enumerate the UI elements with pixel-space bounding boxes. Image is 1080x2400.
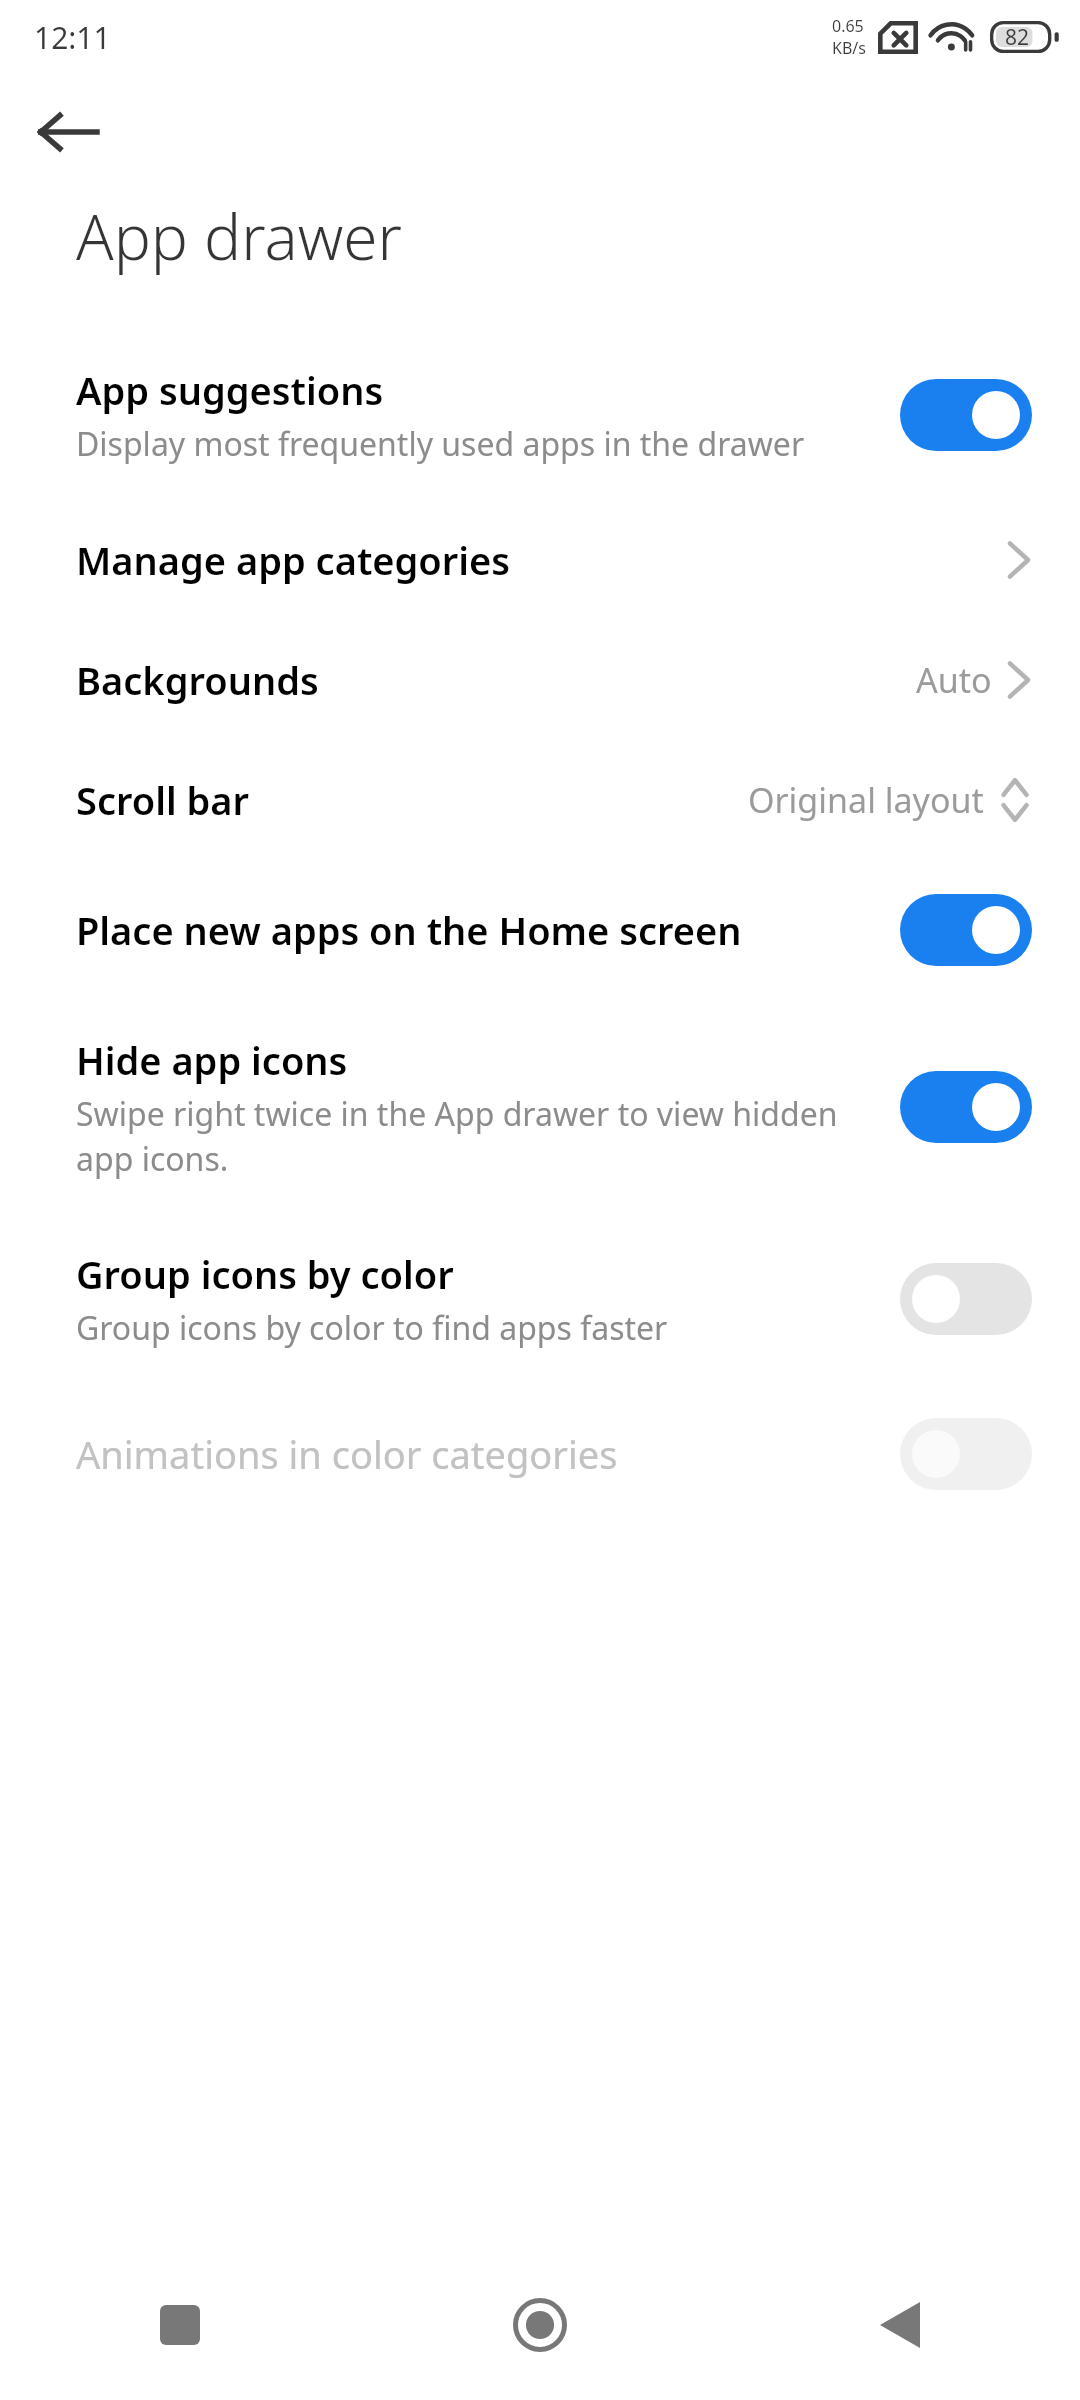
staticText: Swipe right twice in the App drawer to v… — [76, 1092, 872, 1180]
button[interactable]: Toggle on — [900, 894, 1032, 966]
staticText: Display most frequently used apps in the… — [76, 422, 805, 466]
button[interactable]: Toggle on — [900, 379, 1032, 451]
button[interactable]: Backgrounds — [0, 620, 1080, 740]
button[interactable]: Back — [720, 2250, 1080, 2400]
staticText: Scroll bar — [76, 774, 250, 826]
staticText: Backgrounds — [76, 654, 319, 706]
button[interactable]: Manage app categories — [0, 500, 1080, 620]
staticText: Hide app icons — [76, 1034, 348, 1086]
button[interactable]: App suggestions — [0, 330, 1080, 500]
button[interactable]: Toggle on — [900, 1071, 1032, 1143]
button[interactable]: Toggle off — [900, 1263, 1032, 1335]
button[interactable]: Back — [22, 86, 114, 178]
button[interactable]: Scroll bar — [0, 740, 1080, 860]
button[interactable]: Animations in color categories — [0, 1384, 1080, 1524]
button[interactable]: Home — [360, 2250, 720, 2400]
staticText: Original layout — [748, 777, 984, 823]
staticText: 12:11 — [34, 17, 111, 58]
staticText: KB/s — [832, 37, 866, 59]
staticText: Place new apps on the Home screen — [76, 904, 742, 956]
staticText: Auto — [916, 657, 992, 703]
staticText: App suggestions — [76, 364, 384, 416]
staticText: Group icons by color to find apps faster — [76, 1306, 668, 1350]
button[interactable]: Hide app icons — [0, 1000, 1080, 1214]
staticText: Animations in color categories — [76, 1428, 618, 1480]
staticText: 0.65 — [832, 15, 864, 37]
staticText: Manage app categories — [76, 534, 510, 586]
button[interactable]: Group icons by color — [0, 1214, 1080, 1384]
button[interactable]: Place new apps on the Home screen — [0, 860, 1080, 1000]
staticText: App drawer — [76, 194, 402, 278]
button[interactable]: Recent apps — [0, 2250, 360, 2400]
other: Toggle disabled — [900, 1418, 1032, 1490]
staticText: 82 — [1005, 23, 1030, 52]
staticText: Group icons by color — [76, 1248, 454, 1300]
